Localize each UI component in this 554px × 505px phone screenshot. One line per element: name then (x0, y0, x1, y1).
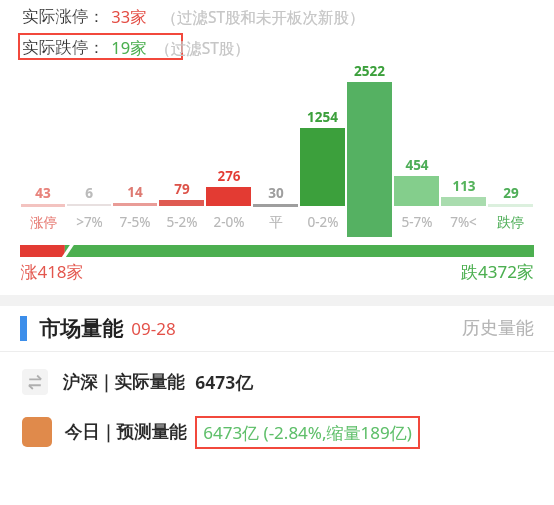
staticText: 实际涨停： (22, 6, 105, 27)
other: 沪深实际量能图标 (22, 369, 48, 395)
button[interactable]: 43 (20, 184, 66, 237)
button[interactable]: 14 (112, 183, 158, 237)
staticText: 7-5% (119, 213, 151, 231)
staticText: 5-2% (166, 213, 198, 231)
staticText: 5-7% (401, 213, 433, 231)
staticText: 跌停 (497, 214, 524, 231)
staticText: 14 (127, 183, 143, 201)
button[interactable]: 113 (440, 177, 487, 237)
staticText: 7%< (450, 213, 477, 231)
button[interactable]: 历史量能 (462, 317, 534, 340)
button[interactable]: 29 (487, 184, 534, 237)
staticText: 平 (269, 214, 283, 231)
staticText: 0-2% (307, 213, 339, 231)
staticText: 30 (268, 184, 284, 202)
button[interactable]: 1254 (299, 108, 346, 237)
staticText: 2-0% (213, 213, 245, 231)
staticText: 6473亿 (195, 370, 253, 394)
button[interactable]: 276 (205, 167, 252, 237)
staticText: 43 (35, 184, 51, 202)
button[interactable]: 79 (158, 180, 205, 237)
staticText: 实际跌停： (22, 37, 105, 58)
button[interactable]: 2522 (346, 62, 393, 237)
staticText: >7% (76, 213, 103, 231)
staticText: 沪深｜实际量能 (62, 371, 185, 393)
staticText: 454 (405, 156, 429, 174)
staticText: 历史量能 (462, 317, 534, 340)
staticText: 09-28 (131, 317, 176, 340)
staticText: 33家 (111, 5, 147, 28)
staticText: 2522 (354, 62, 385, 80)
staticText: 今日｜预测量能 (64, 421, 187, 443)
staticText: 19家 (111, 36, 147, 59)
button[interactable]: 30 (252, 184, 299, 237)
button[interactable]: 454 (393, 156, 440, 237)
staticText: 6 (85, 184, 93, 202)
staticText: 1254 (307, 108, 338, 126)
staticText: 市场量能 (39, 316, 123, 342)
staticText: （过滤ST股） (155, 37, 250, 58)
other: 预测量能图标 (22, 417, 52, 447)
staticText: 113 (452, 177, 476, 195)
staticText: 29 (503, 184, 519, 202)
staticText: 涨停 (30, 214, 57, 231)
staticText: （过滤ST股和未开板次新股） (161, 6, 365, 27)
staticText: 276 (217, 167, 241, 185)
staticText: 涨418家 (20, 260, 84, 283)
staticText: 跌4372家 (461, 260, 534, 283)
button[interactable]: 6 (66, 184, 112, 237)
staticText: 6473亿 (-2.84%,缩量189亿) (203, 421, 412, 444)
staticText: 79 (174, 180, 190, 198)
